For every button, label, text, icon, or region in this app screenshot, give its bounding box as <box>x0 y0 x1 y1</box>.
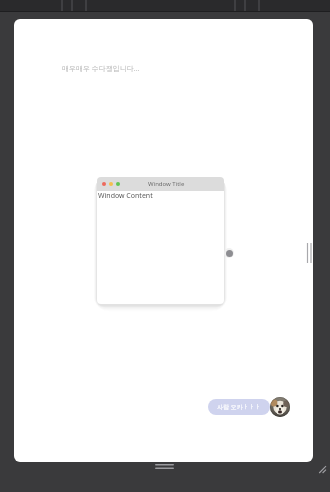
staticText: Window Title <box>148 180 185 188</box>
button[interactable]: Minimize <box>109 182 113 186</box>
button[interactable]: 사람 오카ㅏㅏㅏ <box>208 397 290 417</box>
staticText: 사람 오카ㅏㅏㅏ <box>217 403 261 411</box>
staticText: Window Content <box>98 191 153 201</box>
staticText: 매우매우 수다쟁입니다... <box>62 64 140 74</box>
button[interactable]: Resize handle <box>224 248 234 258</box>
button[interactable]: Profile picture <box>270 397 290 417</box>
button[interactable]: Close <box>102 182 106 186</box>
button[interactable]: Maximize <box>116 182 120 186</box>
button[interactable]: Close <box>97 177 224 304</box>
